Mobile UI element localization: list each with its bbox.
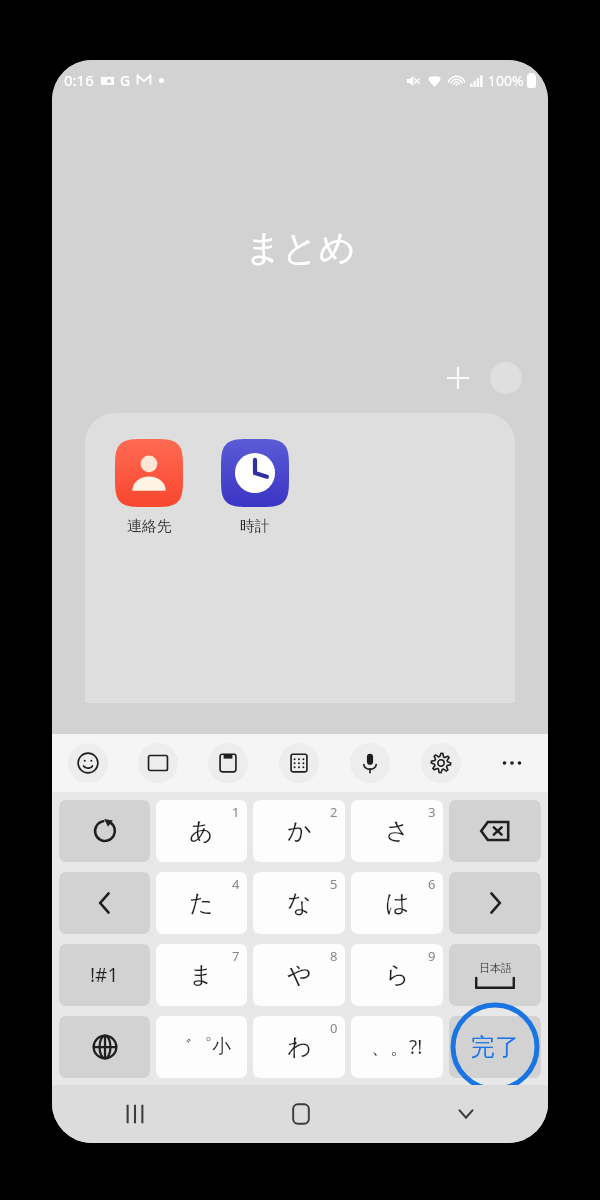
button[interactable]: アプリを追加: [440, 360, 476, 396]
button[interactable]: キーボードを閉じる: [383, 1085, 548, 1143]
staticText: さ: [385, 816, 410, 846]
staticText: G: [120, 71, 131, 90]
staticText: 0:16: [64, 70, 94, 90]
button[interactable]: さ: [351, 800, 443, 862]
staticText: た: [189, 888, 214, 918]
button[interactable]: その他: [492, 743, 532, 783]
button[interactable]: その他のオプション: [490, 362, 522, 394]
staticText: 3: [428, 803, 436, 821]
button[interactable]: 、。?!: [351, 1016, 443, 1078]
staticText: 時計: [240, 517, 270, 536]
button[interactable]: クリップボード: [208, 743, 248, 783]
staticText: 9: [428, 947, 436, 965]
button[interactable]: あ: [156, 800, 247, 862]
staticText: わ: [287, 1032, 312, 1062]
button[interactable]: 最近のアプリ: [52, 1085, 218, 1143]
button[interactable]: ま: [156, 944, 247, 1006]
button[interactable]: な: [253, 872, 345, 934]
staticText: 4: [232, 875, 240, 893]
staticText: 0: [330, 1019, 338, 1037]
button[interactable]: や: [253, 944, 345, 1006]
button[interactable]: は: [351, 872, 443, 934]
staticText: ゛゜小: [173, 1035, 231, 1059]
staticText: あ: [189, 816, 214, 846]
staticText: か: [287, 816, 312, 846]
staticText: 完了: [471, 1032, 519, 1062]
staticText: 100%: [488, 71, 524, 90]
staticText: 連絡先: [127, 517, 172, 536]
button[interactable]: !#1: [59, 944, 150, 1006]
staticText: ま: [189, 960, 214, 990]
button[interactable]: 絵文字: [68, 743, 108, 783]
staticText: !#1: [90, 962, 119, 988]
button[interactable]: ホーム: [218, 1085, 383, 1143]
staticText: 6: [428, 875, 436, 893]
button[interactable]: 元に戻す: [59, 800, 150, 862]
button[interactable]: 右へ移動: [449, 872, 541, 934]
staticText: 日本語: [479, 961, 512, 975]
staticText: 、。?!: [371, 1034, 423, 1060]
staticText: 7: [232, 947, 240, 965]
button[interactable]: 言語を切り替え: [59, 1016, 150, 1078]
staticText: 2: [330, 803, 338, 821]
button[interactable]: 記号: [138, 743, 178, 783]
staticText: 8: [330, 947, 338, 965]
button[interactable]: 連絡先: [107, 437, 191, 538]
button[interactable]: 削除: [449, 800, 541, 862]
button[interactable]: ゛゜小: [156, 1016, 247, 1078]
button[interactable]: ら: [351, 944, 443, 1006]
staticText: ら: [385, 960, 410, 990]
button[interactable]: 完了: [449, 1016, 541, 1078]
button[interactable]: キーボードレイアウト: [279, 743, 319, 783]
staticText: や: [287, 960, 312, 990]
button[interactable]: 設定: [421, 743, 461, 783]
button[interactable]: 音声入力: [350, 743, 390, 783]
button[interactable]: 時計: [213, 437, 297, 538]
staticText: 1: [232, 803, 240, 821]
staticText: は: [385, 888, 410, 918]
button[interactable]: わ: [253, 1016, 345, 1078]
staticText: な: [287, 888, 312, 918]
button[interactable]: た: [156, 872, 247, 934]
button[interactable]: 左へ移動: [59, 872, 150, 934]
button[interactable]: スペース: [449, 944, 541, 1006]
staticText: 5: [330, 875, 338, 893]
staticText: まとめ: [245, 225, 356, 270]
button[interactable]: か: [253, 800, 345, 862]
